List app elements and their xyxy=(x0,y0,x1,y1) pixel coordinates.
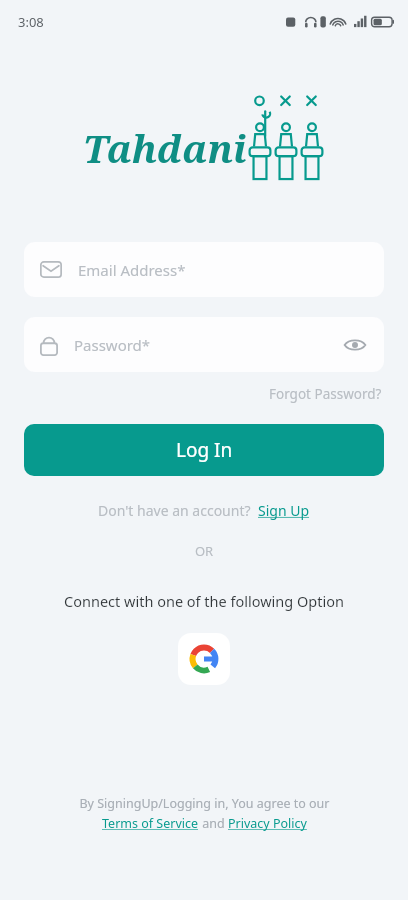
staticText: Connect with one of the following Option xyxy=(0,591,408,611)
staticText: Email Address* xyxy=(78,260,186,280)
staticText: Don't have an account? xyxy=(98,501,258,520)
staticText: OR xyxy=(0,542,408,560)
button[interactable]: Show password xyxy=(342,332,368,358)
staticText: Sign Up xyxy=(258,501,310,520)
staticText: and xyxy=(199,815,228,832)
staticText: Log In xyxy=(176,437,233,463)
button[interactable]: Sign Up xyxy=(258,501,310,520)
button[interactable]: Log In xyxy=(24,424,384,476)
staticText: Password* xyxy=(74,335,151,355)
button[interactable]: Forgot Password? xyxy=(267,383,384,405)
staticText: Tahdani xyxy=(83,122,247,174)
button[interactable]: Sign in with Google xyxy=(178,633,230,685)
staticText: By SigningUp/Logging in, You agree to ou… xyxy=(79,795,330,812)
button[interactable]: Privacy Policy xyxy=(228,815,307,832)
staticText: 3:08 xyxy=(18,13,44,31)
button[interactable]: Password* xyxy=(24,317,384,372)
staticText: Privacy Policy xyxy=(228,815,307,832)
button[interactable]: Email Address* xyxy=(24,242,384,297)
staticText: Terms of Service xyxy=(102,815,199,832)
button[interactable]: Terms of Service xyxy=(102,815,199,832)
staticText: Forgot Password? xyxy=(269,385,382,403)
